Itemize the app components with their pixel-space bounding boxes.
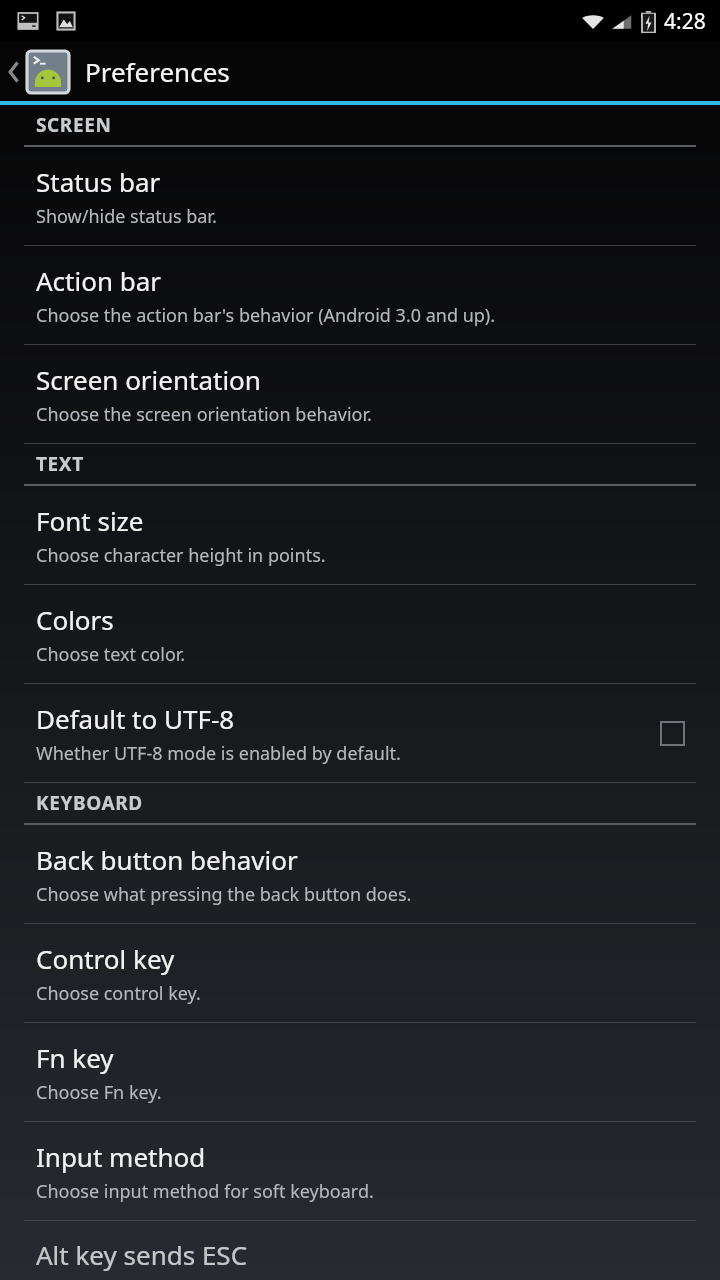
- button[interactable]: Action bar: [0, 246, 720, 344]
- button[interactable]: Navigate up: [0, 42, 720, 101]
- staticText: Choose what pressing the back button doe…: [36, 882, 412, 907]
- staticText: Choose character height in points.: [36, 543, 326, 568]
- staticText: Choose control key.: [36, 981, 201, 1006]
- staticText: Status bar: [36, 164, 161, 199]
- staticText: Input method: [36, 1139, 206, 1174]
- staticText: Whether UTF-8 mode is enabled by default…: [36, 741, 401, 766]
- staticText: Fn key: [36, 1040, 114, 1075]
- button[interactable]: Screen orientation: [0, 345, 720, 443]
- button[interactable]: Status bar: [0, 147, 720, 245]
- staticText: KEYBOARD: [36, 790, 143, 816]
- button[interactable]: Colors: [0, 585, 720, 683]
- staticText: Choose text color.: [36, 642, 186, 667]
- staticText: Show/hide status bar.: [36, 204, 217, 229]
- staticText: 4:28: [664, 7, 706, 36]
- staticText: Alt key sends ESC: [36, 1237, 248, 1272]
- staticText: Action bar: [36, 263, 162, 298]
- staticText: Preferences: [85, 54, 230, 89]
- button[interactable]: Fn key: [0, 1023, 720, 1121]
- staticText: Screen orientation: [36, 362, 261, 397]
- button[interactable]: Input method: [0, 1122, 720, 1220]
- staticText: Back button behavior: [36, 842, 298, 877]
- staticText: Choose input method for soft keyboard.: [36, 1179, 374, 1204]
- staticText: Font size: [36, 503, 144, 538]
- button[interactable]: Back button behavior: [0, 825, 720, 923]
- button[interactable]: Default to UTF-8 checkbox: [648, 709, 696, 757]
- button[interactable]: Control key: [0, 924, 720, 1022]
- staticText: Choose the action bar's behavior (Androi…: [36, 303, 496, 328]
- button[interactable]: Font size: [0, 486, 720, 584]
- staticText: Colors: [36, 602, 114, 637]
- button[interactable]: Alt key sends ESC: [0, 1221, 720, 1280]
- staticText: Choose the screen orientation behavior.: [36, 402, 372, 427]
- staticText: Default to UTF-8: [36, 701, 235, 736]
- button[interactable]: Default to UTF-8: [0, 684, 720, 782]
- staticText: TEXT: [36, 451, 84, 477]
- staticText: Control key: [36, 941, 175, 976]
- staticText: Choose Fn key.: [36, 1080, 162, 1105]
- staticText: SCREEN: [36, 112, 112, 138]
